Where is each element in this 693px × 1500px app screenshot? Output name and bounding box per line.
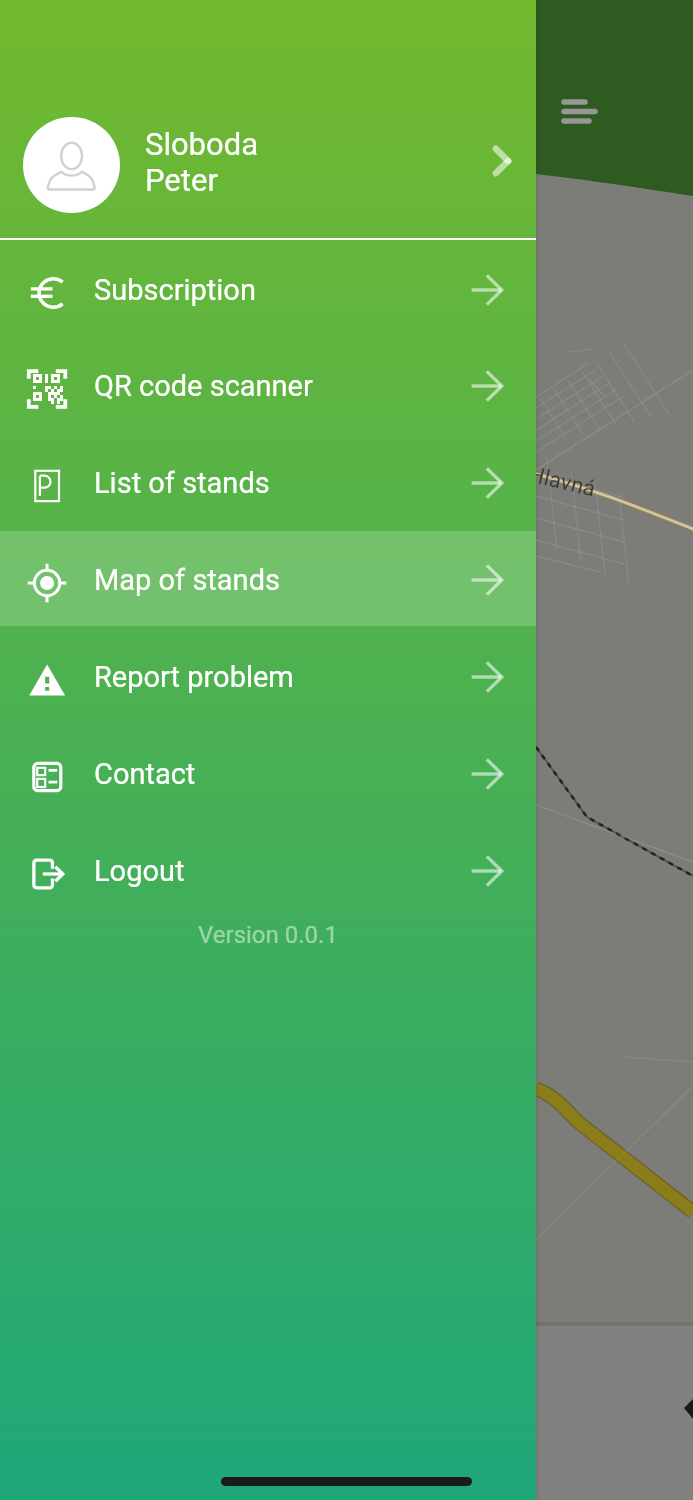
other: Open profile bbox=[482, 141, 522, 181]
button[interactable]: Sloboda bbox=[0, 117, 536, 213]
staticText: Logout bbox=[94, 854, 185, 888]
staticText: Map of stands bbox=[94, 563, 280, 597]
button[interactable]: Subscription bbox=[0, 246, 536, 340]
staticText: List of stands bbox=[94, 466, 270, 500]
button[interactable]: QR code scanner bbox=[0, 342, 536, 436]
staticText: Report problem bbox=[94, 660, 294, 694]
button[interactable]: Contact bbox=[0, 730, 536, 824]
staticText: QR code scanner bbox=[94, 369, 313, 403]
staticText: Hlavná bbox=[526, 461, 598, 503]
staticText: Contact bbox=[94, 757, 196, 791]
staticText: Subscription bbox=[94, 273, 256, 307]
button[interactable]: Report problem bbox=[0, 633, 536, 727]
staticText: Sloboda bbox=[145, 126, 259, 162]
button[interactable]: List of stands bbox=[0, 439, 536, 533]
button[interactable]: Logout bbox=[0, 827, 536, 921]
staticText: Version 0.0.1 bbox=[198, 921, 338, 949]
staticText: Peter bbox=[145, 162, 218, 198]
button[interactable]: Map of stands bbox=[0, 536, 536, 630]
